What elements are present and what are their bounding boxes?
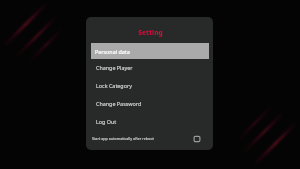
staticText: Start app automatically after reboot (92, 136, 154, 141)
button[interactable]: Autostart checkbox (191, 133, 202, 144)
staticText: Setting (87, 28, 213, 37)
staticText: Log Out (96, 118, 117, 125)
staticText: Change Player (96, 64, 133, 71)
staticText: Personal data (95, 48, 130, 55)
staticText: Change Password (96, 100, 142, 107)
button[interactable]: Log Out (91, 113, 209, 129)
button[interactable]: Lock Category (91, 77, 209, 93)
button[interactable]: Start app automatically after reboot (92, 131, 202, 146)
button[interactable]: Change Player (91, 59, 209, 75)
button[interactable]: Personal data (91, 43, 209, 59)
staticText: Lock Category (96, 82, 132, 89)
button[interactable]: Change Password (91, 95, 209, 111)
